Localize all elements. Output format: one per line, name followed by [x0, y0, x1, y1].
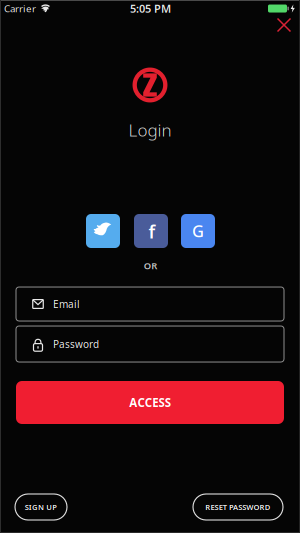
button[interactable]: Sign in with Google [181, 214, 215, 248]
staticText: G [192, 220, 204, 242]
staticText: 5:05 PM [130, 1, 171, 16]
button[interactable]: RESET PASSWORD [193, 494, 283, 520]
button[interactable]: SIGN UP [15, 494, 67, 520]
staticText: ACCESS [129, 395, 171, 410]
staticText: OR [144, 259, 157, 272]
button[interactable]: Close [274, 15, 293, 34]
staticText: Email [53, 297, 80, 311]
button[interactable]: ACCESS [16, 381, 284, 424]
staticText: Login [128, 118, 171, 142]
staticText: Carrier [4, 2, 36, 15]
button[interactable]: Sign in with Twitter [86, 214, 120, 248]
staticText: SIGN UP [25, 502, 57, 512]
staticText: Password [53, 337, 99, 351]
staticText: f [148, 219, 155, 244]
button[interactable]: Sign in with Facebook [134, 214, 168, 248]
button[interactable]: Password [16, 326, 284, 362]
staticText: RESET PASSWORD [205, 502, 271, 512]
button[interactable]: Email [16, 287, 284, 321]
